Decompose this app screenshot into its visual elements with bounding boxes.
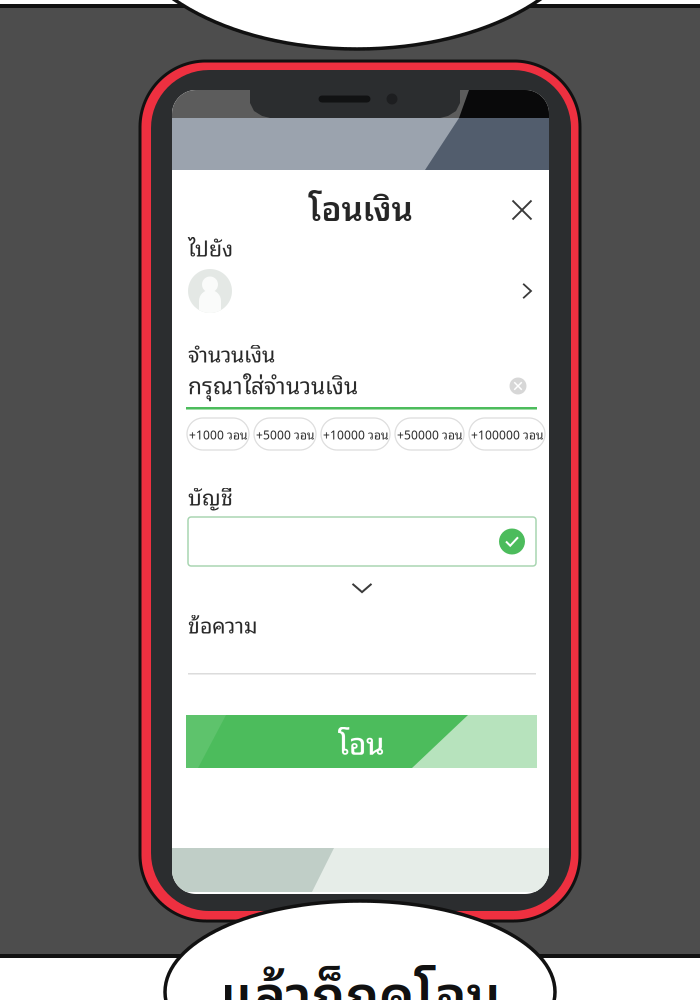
button[interactable]: +10000 วอน — [321, 418, 390, 450]
staticText: +100000 วอน — [471, 424, 543, 444]
staticText: แล้วก็กดโอน — [219, 948, 500, 1000]
staticText: โอน — [338, 718, 385, 765]
button[interactable]: +1000 วอน — [187, 418, 249, 450]
staticText: จำนวนเงิน — [188, 336, 275, 370]
staticText: +10000 วอน — [323, 424, 388, 444]
staticText: ข้อความ — [188, 607, 258, 641]
staticText: +5000 วอน — [256, 424, 314, 444]
staticText: ไปยัง — [188, 230, 233, 264]
button[interactable]: Select account — [188, 517, 536, 566]
staticText: +50000 วอน — [397, 424, 462, 444]
staticText: +1000 วอน — [189, 424, 247, 444]
staticText: บัญชี — [188, 479, 233, 513]
staticText: โอนเงิน — [308, 179, 412, 233]
button[interactable]: Close — [503, 191, 541, 229]
button[interactable]: Choose recipient — [182, 262, 541, 320]
button[interactable]: +100000 วอน — [469, 418, 545, 450]
button[interactable]: โอน — [186, 715, 537, 768]
button[interactable]: Show more accounts — [341, 575, 383, 601]
button[interactable]: +50000 วอน — [395, 418, 464, 450]
staticText: กรุณาใส่จำนวนเงิน — [188, 366, 358, 402]
button[interactable]: +5000 วอน — [254, 418, 316, 450]
button[interactable]: Clear amount — [503, 371, 533, 401]
